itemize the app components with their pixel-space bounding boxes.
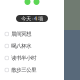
staticText: 今天 · 4 项 bbox=[21, 15, 43, 22]
button[interactable]: 散步三公里 bbox=[0, 64, 64, 76]
staticText: 喝八杯水 bbox=[11, 43, 31, 49]
staticText: 读书半小时 bbox=[11, 55, 36, 61]
button[interactable]: 读书半小时 bbox=[0, 52, 64, 64]
button[interactable]: 喝八杯水 bbox=[0, 40, 64, 52]
staticText: 散步三公里 bbox=[11, 67, 36, 73]
staticText: 晨间冥想 bbox=[11, 31, 31, 37]
button[interactable]: 晨间冥想 bbox=[0, 28, 64, 40]
button[interactable]: 今天 · 4 项 bbox=[16, 15, 48, 22]
